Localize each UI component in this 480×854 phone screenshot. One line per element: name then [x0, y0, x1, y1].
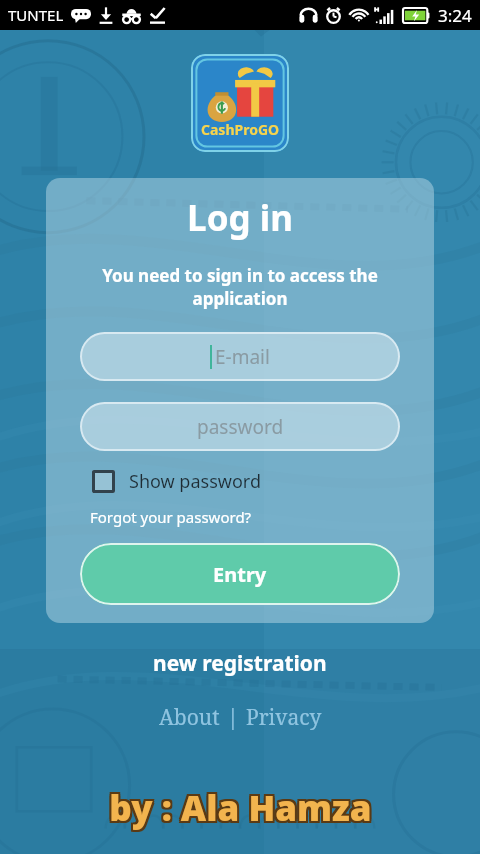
staticText: You need to sign in to access the applic…	[60, 264, 420, 310]
staticText: |	[227, 703, 239, 732]
staticText: password	[197, 414, 284, 440]
staticText: 3:24	[438, 4, 472, 27]
staticText: by : Ala Hamza	[111, 784, 374, 832]
other: CashProGO logo	[191, 54, 289, 152]
button[interactable]: Forgot your password?	[90, 507, 252, 527]
button[interactable]: E-mail	[80, 332, 400, 381]
staticText: E-mail	[215, 344, 270, 370]
staticText: CashProGO	[201, 120, 280, 139]
button[interactable]: About	[156, 703, 223, 732]
staticText: by : Ala Hamza	[107, 786, 370, 834]
staticText: by : Ala Hamza	[109, 784, 372, 832]
button[interactable]: password	[80, 402, 400, 451]
staticText: Entry	[213, 561, 267, 588]
staticText: by : Ala Hamza	[109, 782, 372, 830]
button[interactable]: Privacy	[243, 703, 325, 732]
staticText: Log in	[187, 194, 293, 242]
staticText: by : Ala Hamza	[107, 782, 370, 830]
staticText: by : Ala Hamza	[107, 784, 370, 832]
staticText: by : Ala Hamza	[111, 782, 374, 830]
staticText: by : Ala Hamza	[109, 786, 372, 834]
staticText: TUNTEL	[8, 5, 64, 25]
staticText: by : Ala Hamza	[111, 786, 374, 834]
button[interactable]: new registration	[143, 645, 337, 682]
staticText: Show password	[129, 469, 261, 494]
button[interactable]: Show password	[92, 469, 400, 494]
button[interactable]: Entry	[80, 543, 400, 605]
